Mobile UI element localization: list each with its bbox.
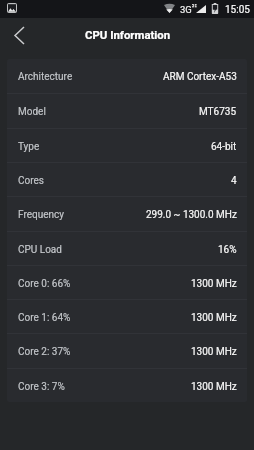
- staticText: Core 2: 37%: [18, 346, 71, 358]
- staticText: Cores: [18, 175, 44, 187]
- staticText: 15:05: [225, 4, 250, 16]
- staticText: Model: [18, 106, 46, 118]
- staticText: Core 3: 7%: [18, 381, 65, 393]
- staticText: MT6735: [199, 106, 237, 118]
- staticText: 4: [231, 175, 237, 187]
- button[interactable]: Architecture: [7, 59, 247, 93]
- button[interactable]: CPU Load: [7, 232, 247, 265]
- staticText: ARM Cortex-A53: [163, 71, 237, 83]
- staticText: 3G: [180, 4, 192, 15]
- staticText: 16%: [218, 244, 237, 256]
- staticText: 1300 MHz: [191, 312, 237, 324]
- staticText: 1300 MHz: [191, 278, 237, 290]
- staticText: 1300 MHz: [191, 381, 237, 393]
- staticText: CPU Load: [18, 244, 62, 256]
- staticText: 64-bit: [211, 141, 237, 153]
- staticText: Core 1: 64%: [18, 312, 71, 324]
- button[interactable]: Type: [7, 129, 247, 162]
- staticText: Architecture: [18, 71, 73, 83]
- button[interactable]: Cores: [7, 163, 247, 196]
- staticText: Type: [18, 141, 40, 153]
- button[interactable]: Core 3: 7%: [7, 369, 247, 402]
- staticText: CPU Information: [85, 28, 171, 41]
- button[interactable]: Back: [2, 18, 36, 52]
- staticText: Core 0: 66%: [18, 278, 71, 290]
- button[interactable]: Model: [7, 94, 247, 128]
- button[interactable]: Core 1: 64%: [7, 300, 247, 333]
- staticText: 299.0 ~ 1300.0 MHz: [146, 209, 237, 221]
- staticText: 1300 MHz: [191, 346, 237, 358]
- button[interactable]: Core 2: 37%: [7, 334, 247, 368]
- staticText: Frequency: [18, 209, 64, 221]
- button[interactable]: Frequency: [7, 197, 247, 231]
- button[interactable]: Core 0: 66%: [7, 266, 247, 299]
